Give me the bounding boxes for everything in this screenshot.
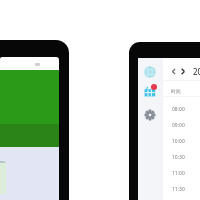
button[interactable]: Previous day <box>171 68 177 75</box>
button[interactable]: 09:00 <box>163 117 200 133</box>
staticText: 08:00 <box>172 106 185 113</box>
staticText: 11:00 <box>172 170 185 177</box>
button[interactable]: 08:00 <box>163 101 200 117</box>
button[interactable]: Profile <box>144 66 156 78</box>
staticText: 09:00 <box>172 122 185 129</box>
button[interactable]: 11:00 <box>163 165 200 181</box>
staticText: 11:30 <box>172 186 185 193</box>
button[interactable] <box>0 161 6 194</box>
staticText: 2024 <box>193 66 200 77</box>
button[interactable]: 10:00 <box>163 133 200 149</box>
button[interactable]: Next day <box>180 68 186 75</box>
button[interactable]: Settings <box>145 110 155 120</box>
button[interactable]: 11:30 <box>163 181 200 197</box>
button[interactable]: 10:30 <box>163 149 200 165</box>
button[interactable]: Cart <box>144 84 158 98</box>
staticText: 10:30 <box>172 154 185 161</box>
staticText: 时间 <box>171 88 181 94</box>
staticText: 10:00 <box>172 138 185 145</box>
